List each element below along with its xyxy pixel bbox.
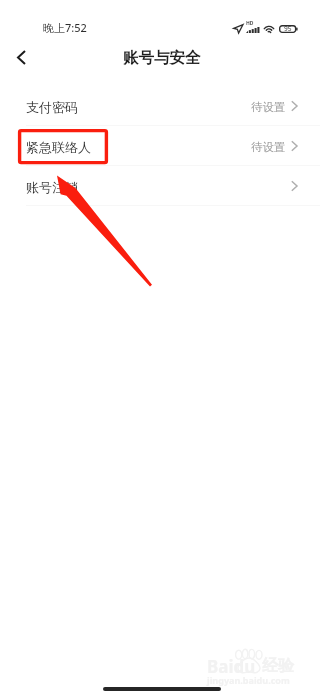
button[interactable]: 支付密码 — [0, 86, 323, 125]
button[interactable]: 账号注销 — [0, 166, 323, 205]
staticText: 支付密码 — [26, 99, 78, 115]
button[interactable]: Back — [6, 42, 37, 73]
staticText: 待设置 — [251, 140, 286, 154]
staticText: HD — [246, 20, 254, 27]
staticText: jingyan.baidu.com — [207, 674, 290, 686]
staticText: 账号注销 — [26, 179, 78, 195]
button[interactable]: 紧急联络人 — [0, 126, 323, 165]
staticText: 晚上7:52 — [43, 20, 87, 35]
staticText: 经验 — [262, 656, 294, 676]
staticText: 待设置 — [251, 100, 286, 114]
staticText: Baidu — [207, 655, 256, 678]
staticText: 账号与安全 — [123, 48, 201, 68]
staticText: 紧急联络人 — [26, 139, 91, 155]
staticText: 95 — [284, 24, 292, 33]
